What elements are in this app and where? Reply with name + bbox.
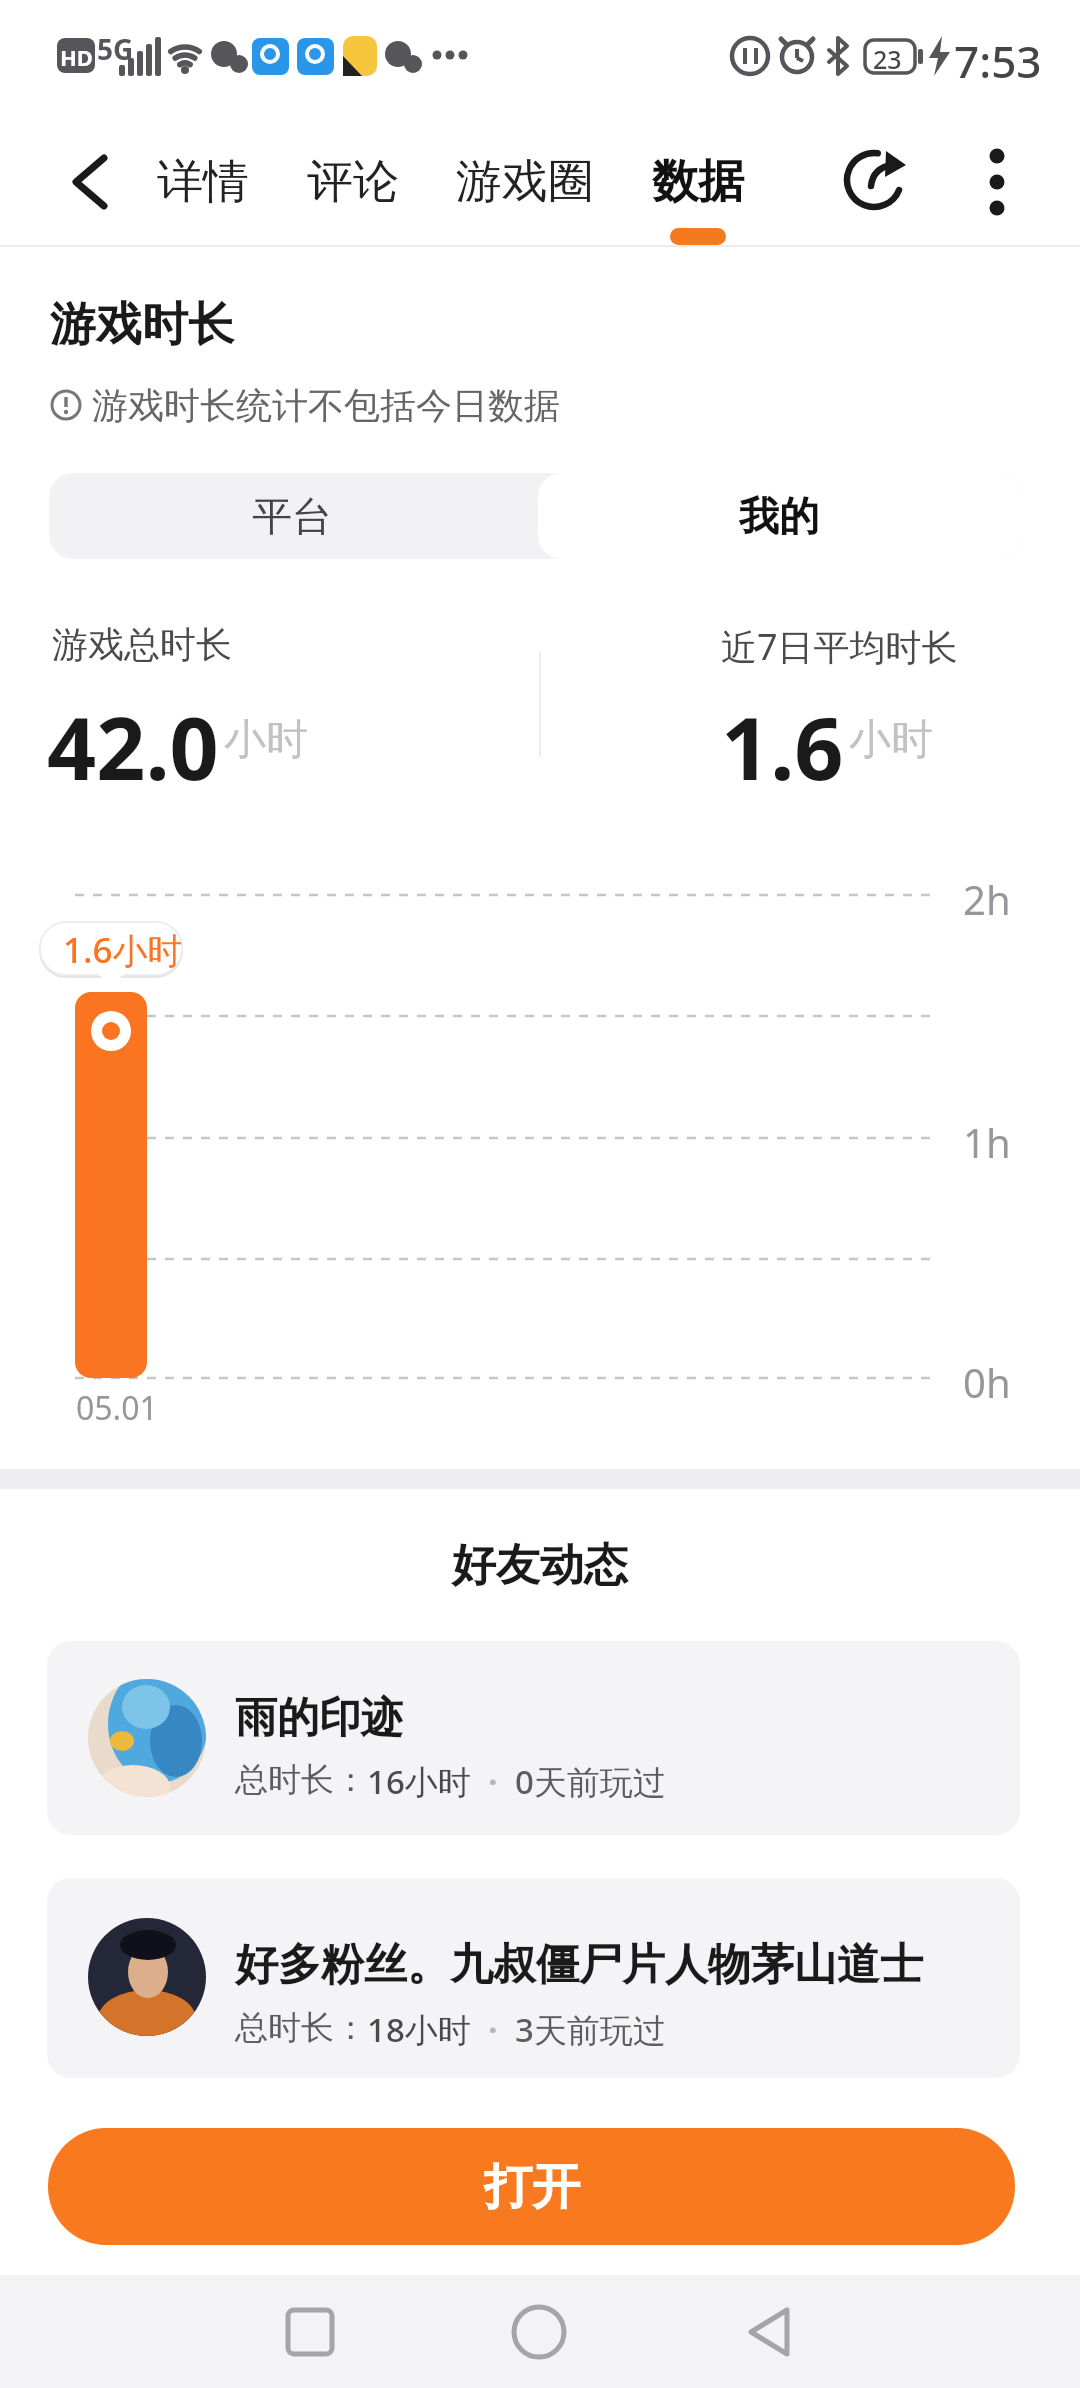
staticText: 游戏时长统计不包括今日数据 xyxy=(92,383,560,428)
button[interactable] xyxy=(507,2295,571,2369)
staticText: 42.0 xyxy=(47,688,219,805)
staticText: 我的 xyxy=(739,491,819,541)
staticText: 总时长： xyxy=(235,2007,367,2049)
button[interactable] xyxy=(278,2295,342,2369)
staticText: 雨的印迹 xyxy=(235,1692,403,1745)
staticText: 小时 xyxy=(849,714,933,767)
staticText: 近7日平均时长 xyxy=(721,622,958,671)
staticText: 2h xyxy=(963,872,1011,926)
button[interactable]: 数据 xyxy=(638,146,758,218)
staticText: 好多粉丝。九叔僵尸片人物茅山道士 xyxy=(235,1938,923,1992)
staticText: 16小时 xyxy=(367,1759,471,1804)
staticText: 7:53 xyxy=(954,31,1042,91)
button[interactable]: 打开 xyxy=(48,2128,1015,2245)
button[interactable]: 评论 xyxy=(293,146,413,218)
staticText: 0天前玩过 xyxy=(515,1759,666,1804)
staticText: 数据 xyxy=(652,153,744,211)
button[interactable] xyxy=(840,146,912,218)
staticText: 1.6小时 xyxy=(63,926,183,974)
staticText: 1.6 xyxy=(721,688,844,805)
staticText: 5G xyxy=(97,30,134,68)
button[interactable]: 详情 xyxy=(143,146,263,218)
staticText: 评论 xyxy=(307,153,399,211)
staticText: 3天前玩过 xyxy=(515,2007,666,2052)
button[interactable]: 雨的印迹 xyxy=(47,1641,1020,1835)
button[interactable] xyxy=(736,2295,800,2369)
staticText: · xyxy=(471,2007,515,2052)
staticText: 23 xyxy=(873,42,902,76)
staticText: 游戏圈 xyxy=(456,153,594,211)
staticText: 小时 xyxy=(224,714,308,767)
button[interactable]: 游戏圈 xyxy=(440,146,610,218)
staticText: 总时长： xyxy=(235,1759,367,1801)
staticText: 打开 xyxy=(484,2157,580,2217)
staticText: 05.01 xyxy=(76,1386,158,1430)
staticText: 游戏时长 xyxy=(50,296,234,354)
staticText: 详情 xyxy=(157,153,249,211)
button[interactable] xyxy=(965,140,1029,224)
button[interactable]: 平台 xyxy=(49,473,535,559)
staticText: 18小时 xyxy=(367,2007,471,2052)
staticText: 好友动态 xyxy=(452,1538,628,1593)
staticText: 游戏总时长 xyxy=(52,622,232,667)
staticText: 平台 xyxy=(252,491,332,541)
staticText: · xyxy=(471,1759,515,1804)
button[interactable]: 我的 xyxy=(535,473,1022,559)
staticText: 1h xyxy=(963,1115,1011,1169)
button[interactable] xyxy=(56,146,126,218)
staticText: HD xyxy=(60,42,93,72)
button[interactable]: 好多粉丝。九叔僵尸片人物茅山道士 xyxy=(47,1878,1020,2078)
staticText: 0h xyxy=(963,1355,1011,1409)
